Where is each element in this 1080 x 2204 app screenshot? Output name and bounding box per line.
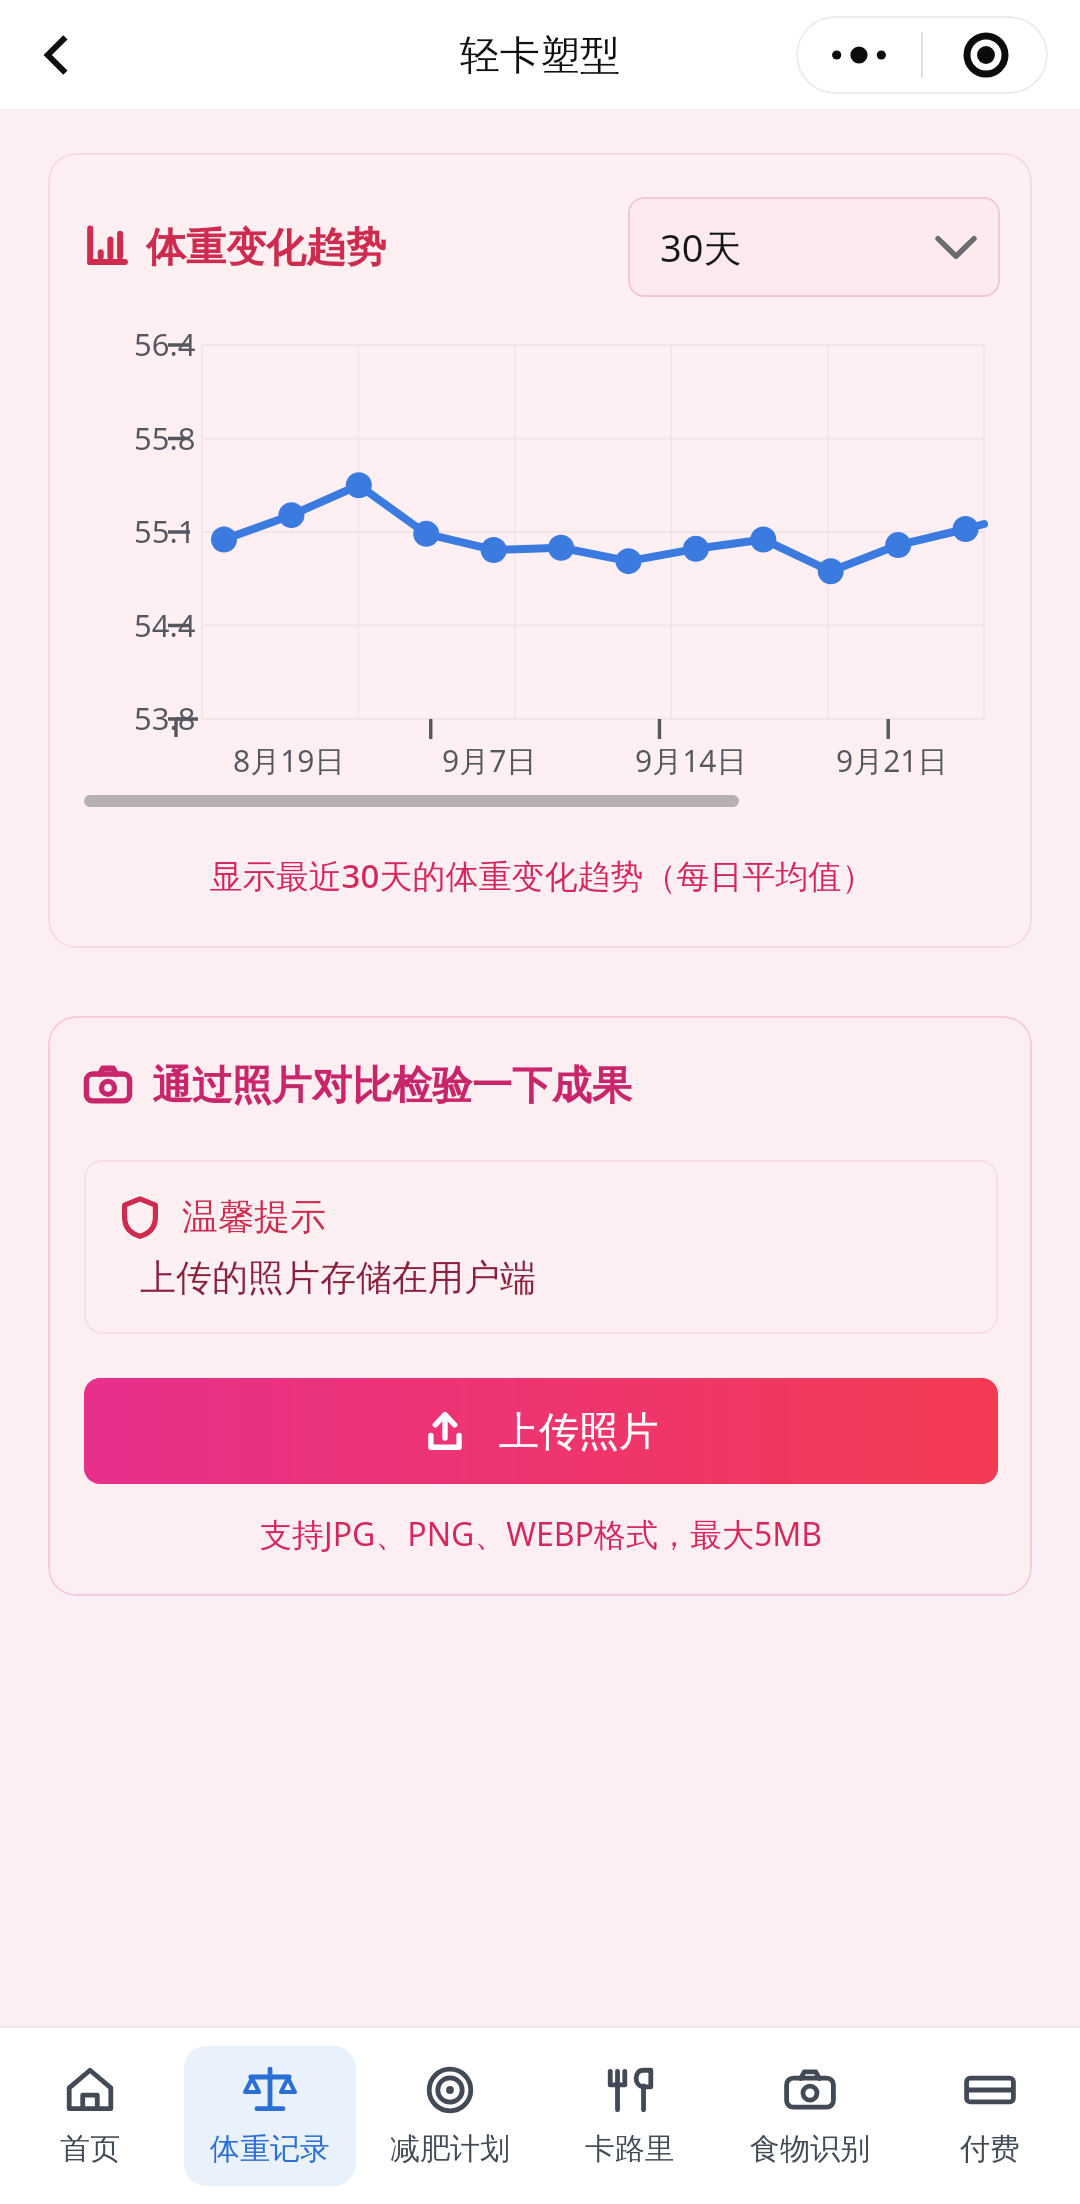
staticText: 减肥计划 bbox=[390, 2130, 510, 2168]
button[interactable]: 食物识别 bbox=[720, 2028, 900, 2204]
staticText: 通过照片对比检验一下成果 bbox=[152, 1060, 632, 1110]
staticText: 体重变化趋势 bbox=[146, 222, 386, 272]
staticText: 30天 bbox=[660, 221, 742, 273]
staticText: 显示最近30天的体重变化趋势（每日平均值） bbox=[84, 853, 1000, 898]
button[interactable]: 付费 bbox=[900, 2028, 1080, 2204]
button[interactable]: 减肥计划 bbox=[360, 2028, 540, 2204]
button[interactable]: 体重记录 bbox=[180, 2028, 360, 2204]
staticText: 9月21日 bbox=[836, 740, 948, 781]
staticText: 支持JPG、PNG、WEBP格式，最大5MB bbox=[84, 1512, 998, 1556]
staticText: 体重记录 bbox=[210, 2130, 330, 2168]
staticText: 9月14日 bbox=[635, 740, 747, 781]
button[interactable]: 关闭 bbox=[923, 16, 1048, 94]
staticText: 轻卡塑型 bbox=[460, 30, 620, 80]
staticText: 温馨提示 bbox=[182, 1194, 326, 1239]
button[interactable]: 首页 bbox=[0, 2028, 180, 2204]
staticText: 首页 bbox=[60, 2130, 120, 2168]
staticText: 付费 bbox=[960, 2130, 1020, 2168]
button[interactable]: 返回 bbox=[14, 12, 100, 98]
staticText: 54.4 bbox=[134, 604, 196, 646]
staticText: 53.8 bbox=[134, 697, 196, 739]
button[interactable]: 上传照片 bbox=[84, 1378, 998, 1484]
button[interactable]: 更多 bbox=[796, 16, 921, 94]
button[interactable]: 卡路里 bbox=[540, 2028, 720, 2204]
staticText: 56.4 bbox=[134, 323, 196, 365]
staticText: 上传的照片存储在用户端 bbox=[140, 1255, 536, 1300]
button[interactable]: 30天 bbox=[628, 197, 1000, 297]
staticText: 食物识别 bbox=[750, 2130, 870, 2168]
staticText: 上传照片 bbox=[499, 1406, 659, 1456]
staticText: 8月19日 bbox=[233, 740, 345, 781]
staticText: 55.8 bbox=[134, 417, 196, 459]
staticText: 55.1 bbox=[134, 510, 196, 552]
staticText: 9月7日 bbox=[442, 740, 537, 781]
staticText: 卡路里 bbox=[585, 2130, 675, 2168]
